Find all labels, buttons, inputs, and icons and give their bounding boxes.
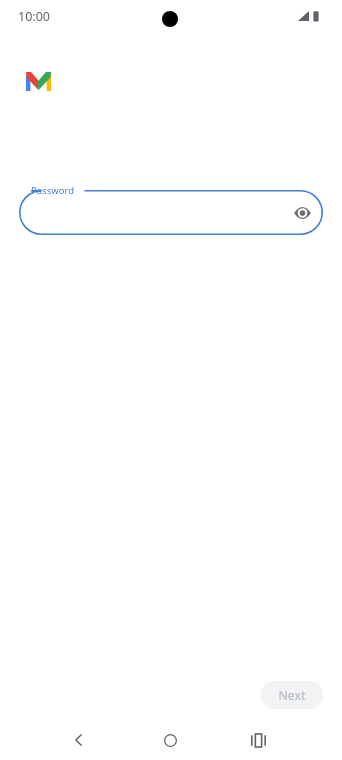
staticText: 10:00 (18, 8, 50, 25)
button[interactable]: Show password (287, 198, 317, 228)
button[interactable]: Home (154, 724, 186, 756)
button[interactable]: Next (261, 681, 323, 709)
button[interactable]: Back (63, 724, 95, 756)
button[interactable]: Recent apps (242, 724, 274, 756)
button[interactable]: Password (19, 190, 323, 235)
staticText: Next (278, 687, 306, 703)
staticText: Password (31, 184, 74, 197)
